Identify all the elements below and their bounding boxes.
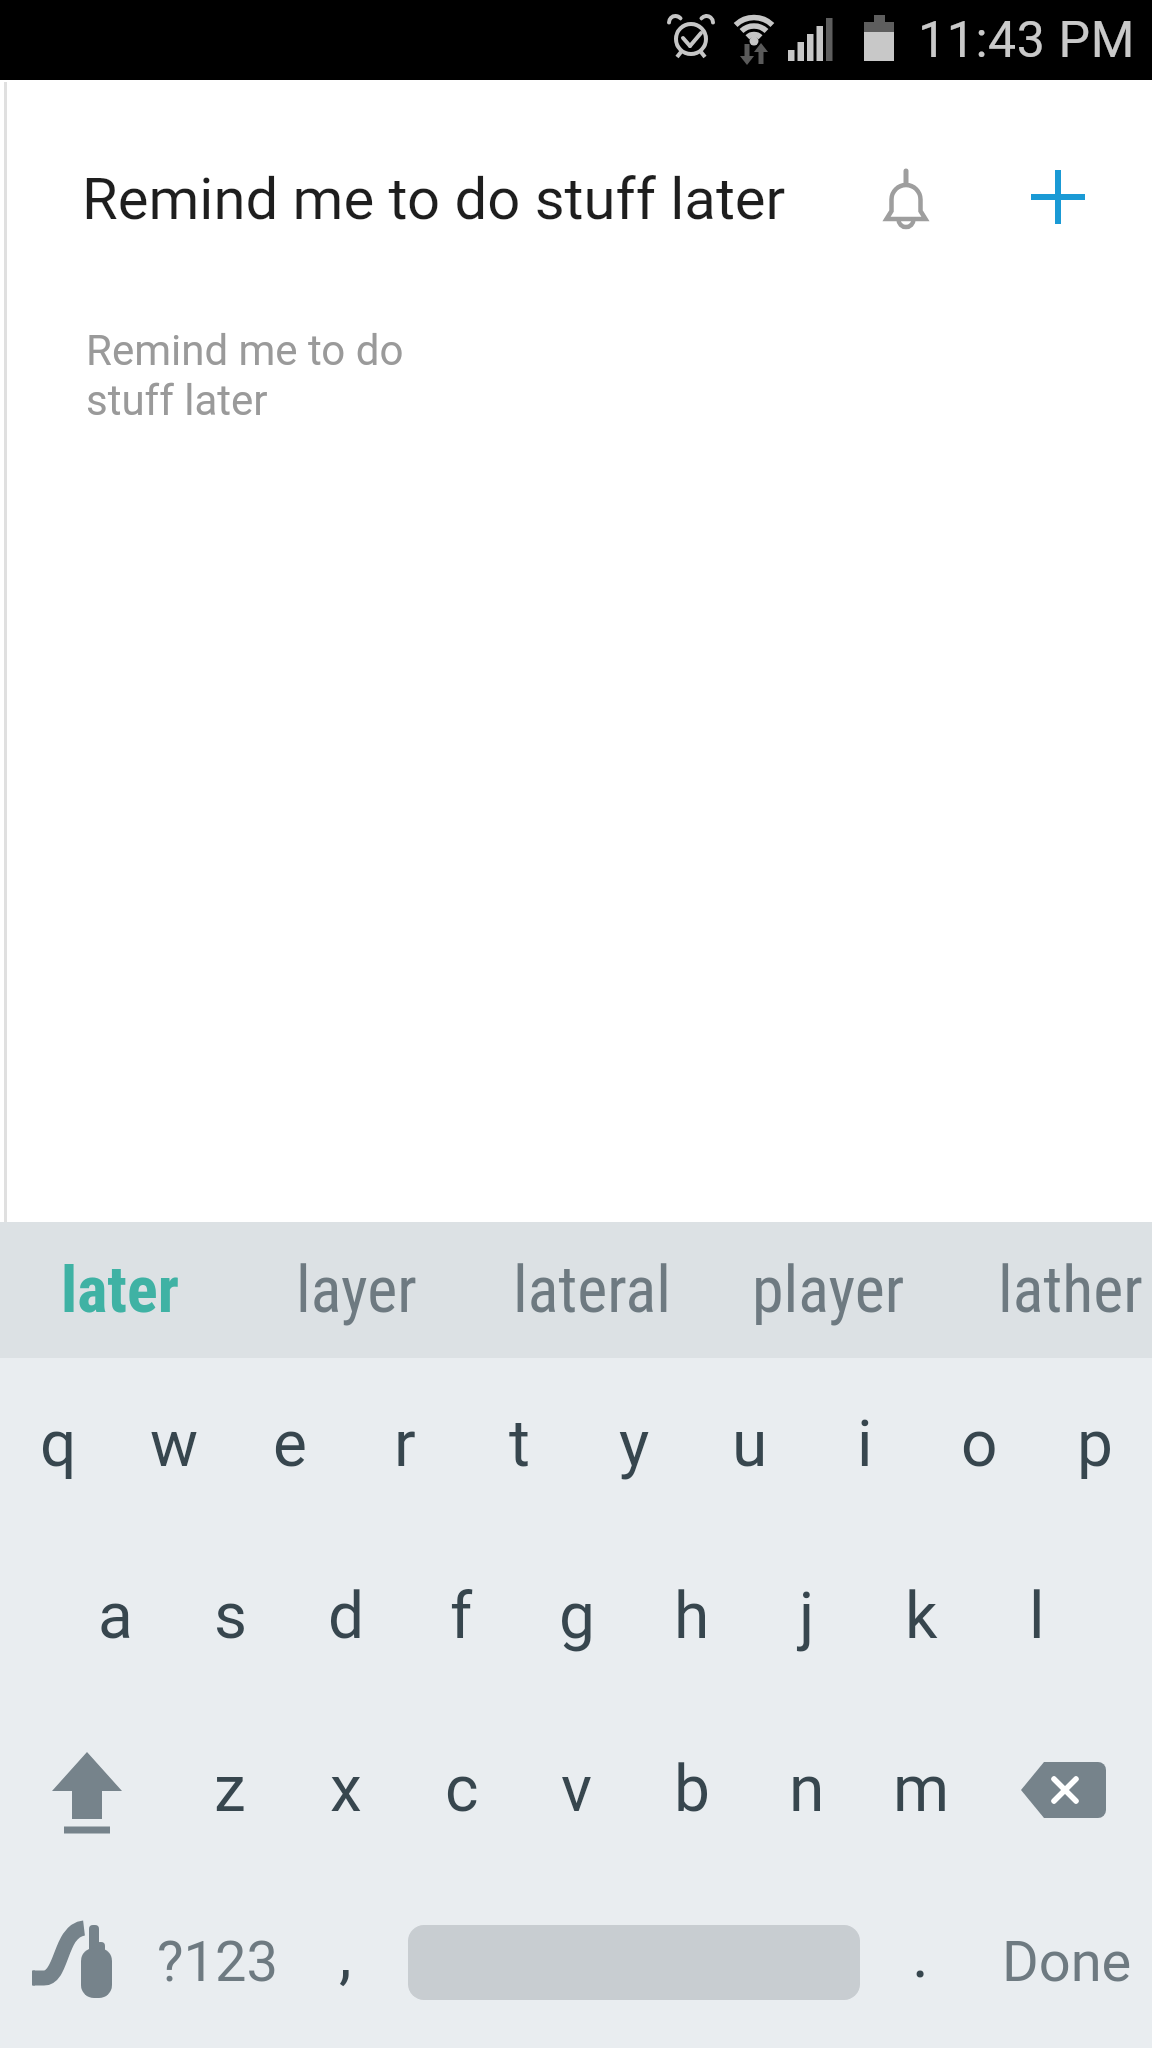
staticText: l: [1029, 1579, 1045, 1654]
staticText: lateral: [513, 1253, 671, 1328]
staticText: Remind me to do: [86, 326, 404, 375]
button[interactable]: f: [404, 1530, 519, 1702]
button[interactable]: player: [715, 1222, 941, 1358]
staticText: h: [674, 1579, 710, 1654]
staticText: q: [40, 1407, 77, 1482]
button[interactable]: lather: [957, 1222, 1152, 1358]
button[interactable]: h: [634, 1530, 749, 1702]
button[interactable]: ,: [295, 1869, 395, 2041]
button[interactable]: g: [519, 1530, 634, 1702]
button[interactable]: later: [7, 1222, 233, 1358]
button[interactable]: [30, 1875, 125, 2047]
button[interactable]: e: [232, 1358, 347, 1530]
staticText: e: [273, 1407, 307, 1482]
staticText: v: [561, 1752, 592, 1827]
button[interactable]: [1013, 1703, 1113, 1875]
staticText: d: [328, 1579, 365, 1654]
staticText: b: [674, 1752, 710, 1827]
button[interactable]: d: [289, 1530, 404, 1702]
button[interactable]: v: [519, 1703, 634, 1875]
staticText: z: [214, 1752, 246, 1827]
staticText: m: [893, 1752, 950, 1827]
staticText: stuff later: [86, 376, 268, 425]
staticText: k: [905, 1579, 938, 1654]
staticText: y: [619, 1407, 650, 1482]
button[interactable]: [866, 158, 946, 238]
staticText: j: [799, 1579, 815, 1654]
staticText: t: [509, 1407, 530, 1482]
button[interactable]: j: [749, 1530, 864, 1702]
button[interactable]: layer: [243, 1222, 469, 1358]
staticText: lather: [998, 1253, 1143, 1328]
button[interactable]: x: [288, 1703, 404, 1875]
staticText: s: [214, 1579, 248, 1654]
staticText: Done: [1002, 1929, 1132, 1995]
button[interactable]: w: [116, 1358, 232, 1530]
button[interactable]: Done: [982, 1876, 1152, 2048]
button[interactable]: [1018, 157, 1098, 237]
button[interactable]: l: [979, 1530, 1094, 1702]
staticText: r: [394, 1407, 416, 1482]
button[interactable]: k: [864, 1530, 979, 1702]
staticText: c: [445, 1752, 479, 1827]
button[interactable]: y: [577, 1358, 692, 1530]
button[interactable]: .: [870, 1869, 970, 2041]
staticText: n: [789, 1752, 825, 1827]
staticText: layer: [296, 1253, 417, 1328]
staticText: i: [857, 1407, 873, 1482]
staticText: Remind me to do stuff later: [82, 165, 786, 233]
staticText: player: [752, 1253, 905, 1328]
button[interactable]: a: [57, 1530, 173, 1702]
button[interactable]: m: [864, 1703, 979, 1875]
button[interactable]: z: [172, 1703, 288, 1875]
button[interactable]: u: [692, 1358, 807, 1530]
staticText: ?123: [157, 1929, 278, 1995]
button[interactable]: i: [807, 1358, 922, 1530]
staticText: ,: [339, 1918, 352, 1993]
staticText: p: [1077, 1407, 1113, 1482]
button[interactable]: c: [404, 1703, 519, 1875]
staticText: f: [450, 1579, 473, 1654]
button[interactable]: b: [634, 1703, 749, 1875]
staticText: g: [559, 1579, 595, 1654]
staticText: .: [912, 1918, 929, 1993]
button[interactable]: q: [0, 1358, 116, 1530]
staticText: 11:43 PM: [918, 11, 1135, 70]
button[interactable]: n: [749, 1703, 864, 1875]
button[interactable]: o: [922, 1358, 1037, 1530]
button[interactable]: t: [462, 1358, 577, 1530]
button[interactable]: r: [347, 1358, 462, 1530]
staticText: a: [98, 1579, 133, 1654]
button[interactable]: p: [1037, 1358, 1152, 1530]
staticText: w: [150, 1407, 199, 1482]
staticText: u: [732, 1407, 768, 1482]
button[interactable]: ?123: [137, 1876, 297, 2048]
button[interactable]: lateral: [479, 1222, 705, 1358]
staticText: x: [330, 1752, 362, 1827]
button[interactable]: s: [173, 1530, 289, 1702]
staticText: o: [961, 1407, 998, 1482]
button[interactable]: [37, 1703, 137, 1875]
staticText: later: [61, 1253, 179, 1328]
